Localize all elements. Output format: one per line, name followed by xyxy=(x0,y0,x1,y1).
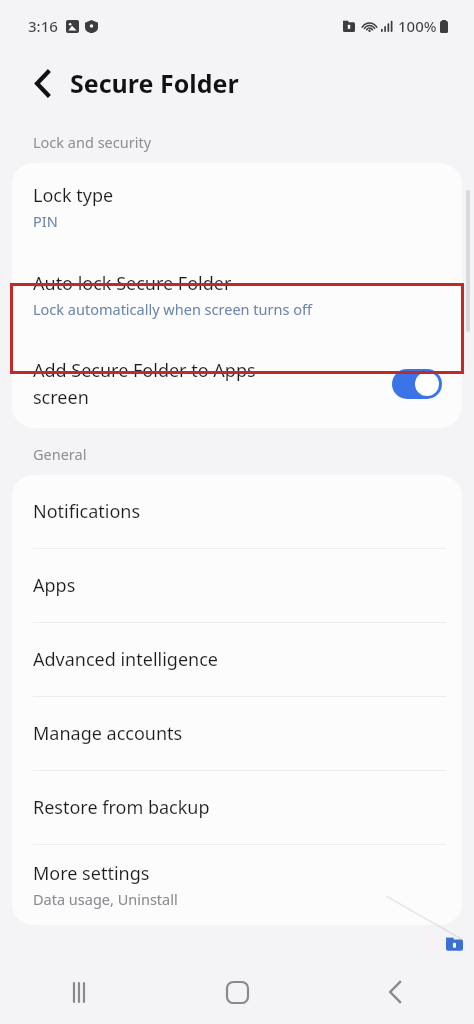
button[interactable]: Advanced intelligence xyxy=(12,623,462,696)
staticText: Secure Folder xyxy=(70,66,239,100)
staticText: Data usage, Uninstall xyxy=(33,889,178,909)
staticText: General xyxy=(33,444,87,464)
staticText: PIN xyxy=(33,211,58,231)
staticText: Lock and security xyxy=(33,132,152,152)
staticText: Manage accounts xyxy=(33,721,183,746)
button[interactable]: Manage accounts xyxy=(12,697,462,770)
staticText: Add Secure Folder to Apps xyxy=(33,358,256,383)
staticText: 3:16 xyxy=(28,16,58,36)
staticText: Lock automatically when screen turns off xyxy=(33,299,312,319)
button[interactable]: Add Secure Folder to Apps screen toggle xyxy=(392,369,442,399)
staticText: screen xyxy=(33,385,89,410)
staticText: Advanced intelligence xyxy=(33,647,218,672)
button[interactable]: Recent apps xyxy=(0,960,158,1024)
staticText: Apps xyxy=(33,573,76,598)
staticText: Restore from backup xyxy=(33,795,210,820)
button[interactable]: More settings xyxy=(12,845,462,925)
button[interactable]: Lock type xyxy=(12,163,462,250)
button[interactable]: Notifications xyxy=(12,475,462,548)
staticText: Auto lock Secure Folder xyxy=(33,271,232,296)
button[interactable]: Back xyxy=(20,61,64,105)
staticText: Lock type xyxy=(33,183,114,208)
staticText: Notifications xyxy=(33,499,141,524)
button[interactable]: Auto lock Secure Folder xyxy=(12,250,462,340)
button[interactable]: Apps xyxy=(12,549,462,622)
staticText: 100% xyxy=(398,16,437,36)
button[interactable]: Home xyxy=(158,960,316,1024)
button[interactable]: Add Secure Folder to Apps xyxy=(12,340,462,428)
button[interactable]: Restore from backup xyxy=(12,771,462,844)
staticText: More settings xyxy=(33,861,150,886)
button[interactable]: Back xyxy=(316,960,474,1024)
